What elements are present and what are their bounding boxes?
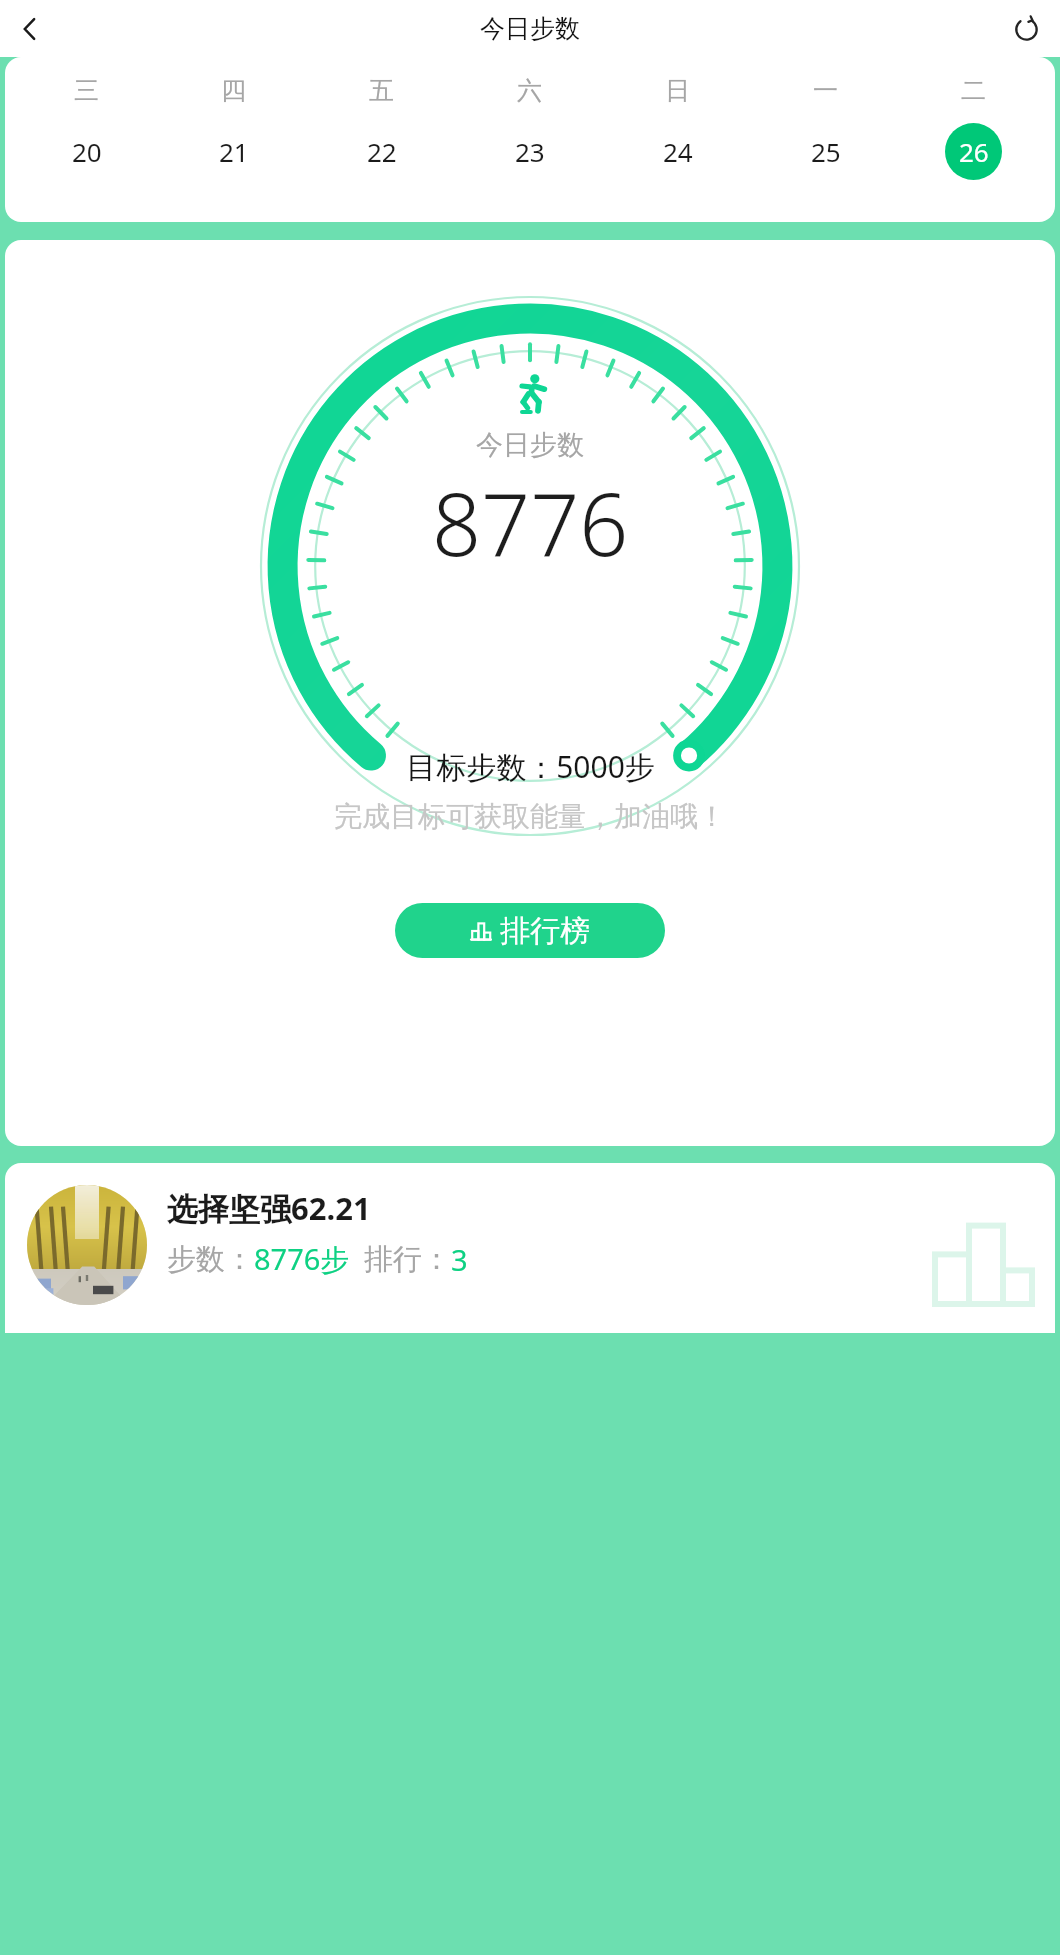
staticText: 六 [517, 75, 542, 106]
staticText: 8776步 [254, 1239, 350, 1279]
staticText: 四 [221, 75, 246, 106]
staticText: 8776 [432, 464, 629, 581]
button[interactable]: Back [6, 5, 54, 53]
staticText: 排行榜 [500, 912, 590, 950]
staticText: 日 [665, 75, 690, 106]
staticText: 22 [367, 134, 397, 169]
staticText: 三 [74, 75, 99, 106]
button[interactable]: 四 [160, 75, 307, 180]
staticText: 完成目标可获取能量，加油哦！ [334, 799, 726, 834]
button[interactable]: 排行榜 [395, 903, 665, 958]
staticText: 26 [959, 134, 989, 169]
staticText: 24 [663, 134, 693, 169]
staticText: 今日步数 [476, 428, 584, 462]
staticText: 五 [369, 75, 394, 106]
button[interactable]: 日 [603, 75, 751, 180]
button[interactable]: 二 [899, 75, 1047, 180]
staticText: 一 [813, 75, 838, 106]
staticText: 21 [219, 134, 249, 169]
staticText: 23 [515, 134, 545, 169]
button[interactable]: 选择坚强62.21 [5, 1163, 1055, 1333]
staticText: 20 [72, 134, 102, 169]
button[interactable]: Refresh [1002, 5, 1050, 53]
button[interactable]: 五 [307, 75, 455, 180]
staticText: 目标步数：5000步 [406, 746, 655, 787]
staticText: 25 [811, 134, 841, 169]
staticText: 排行： [364, 1241, 451, 1278]
staticText: 今日步数 [480, 13, 580, 44]
button[interactable]: 一 [751, 75, 899, 180]
staticText: 二 [961, 75, 986, 106]
staticText: 步数： [167, 1241, 254, 1278]
staticText: 3 [451, 1240, 468, 1279]
staticText: 选择坚强62.21 [167, 1187, 371, 1229]
button[interactable]: 三 [13, 75, 160, 180]
button[interactable]: 六 [455, 75, 603, 180]
